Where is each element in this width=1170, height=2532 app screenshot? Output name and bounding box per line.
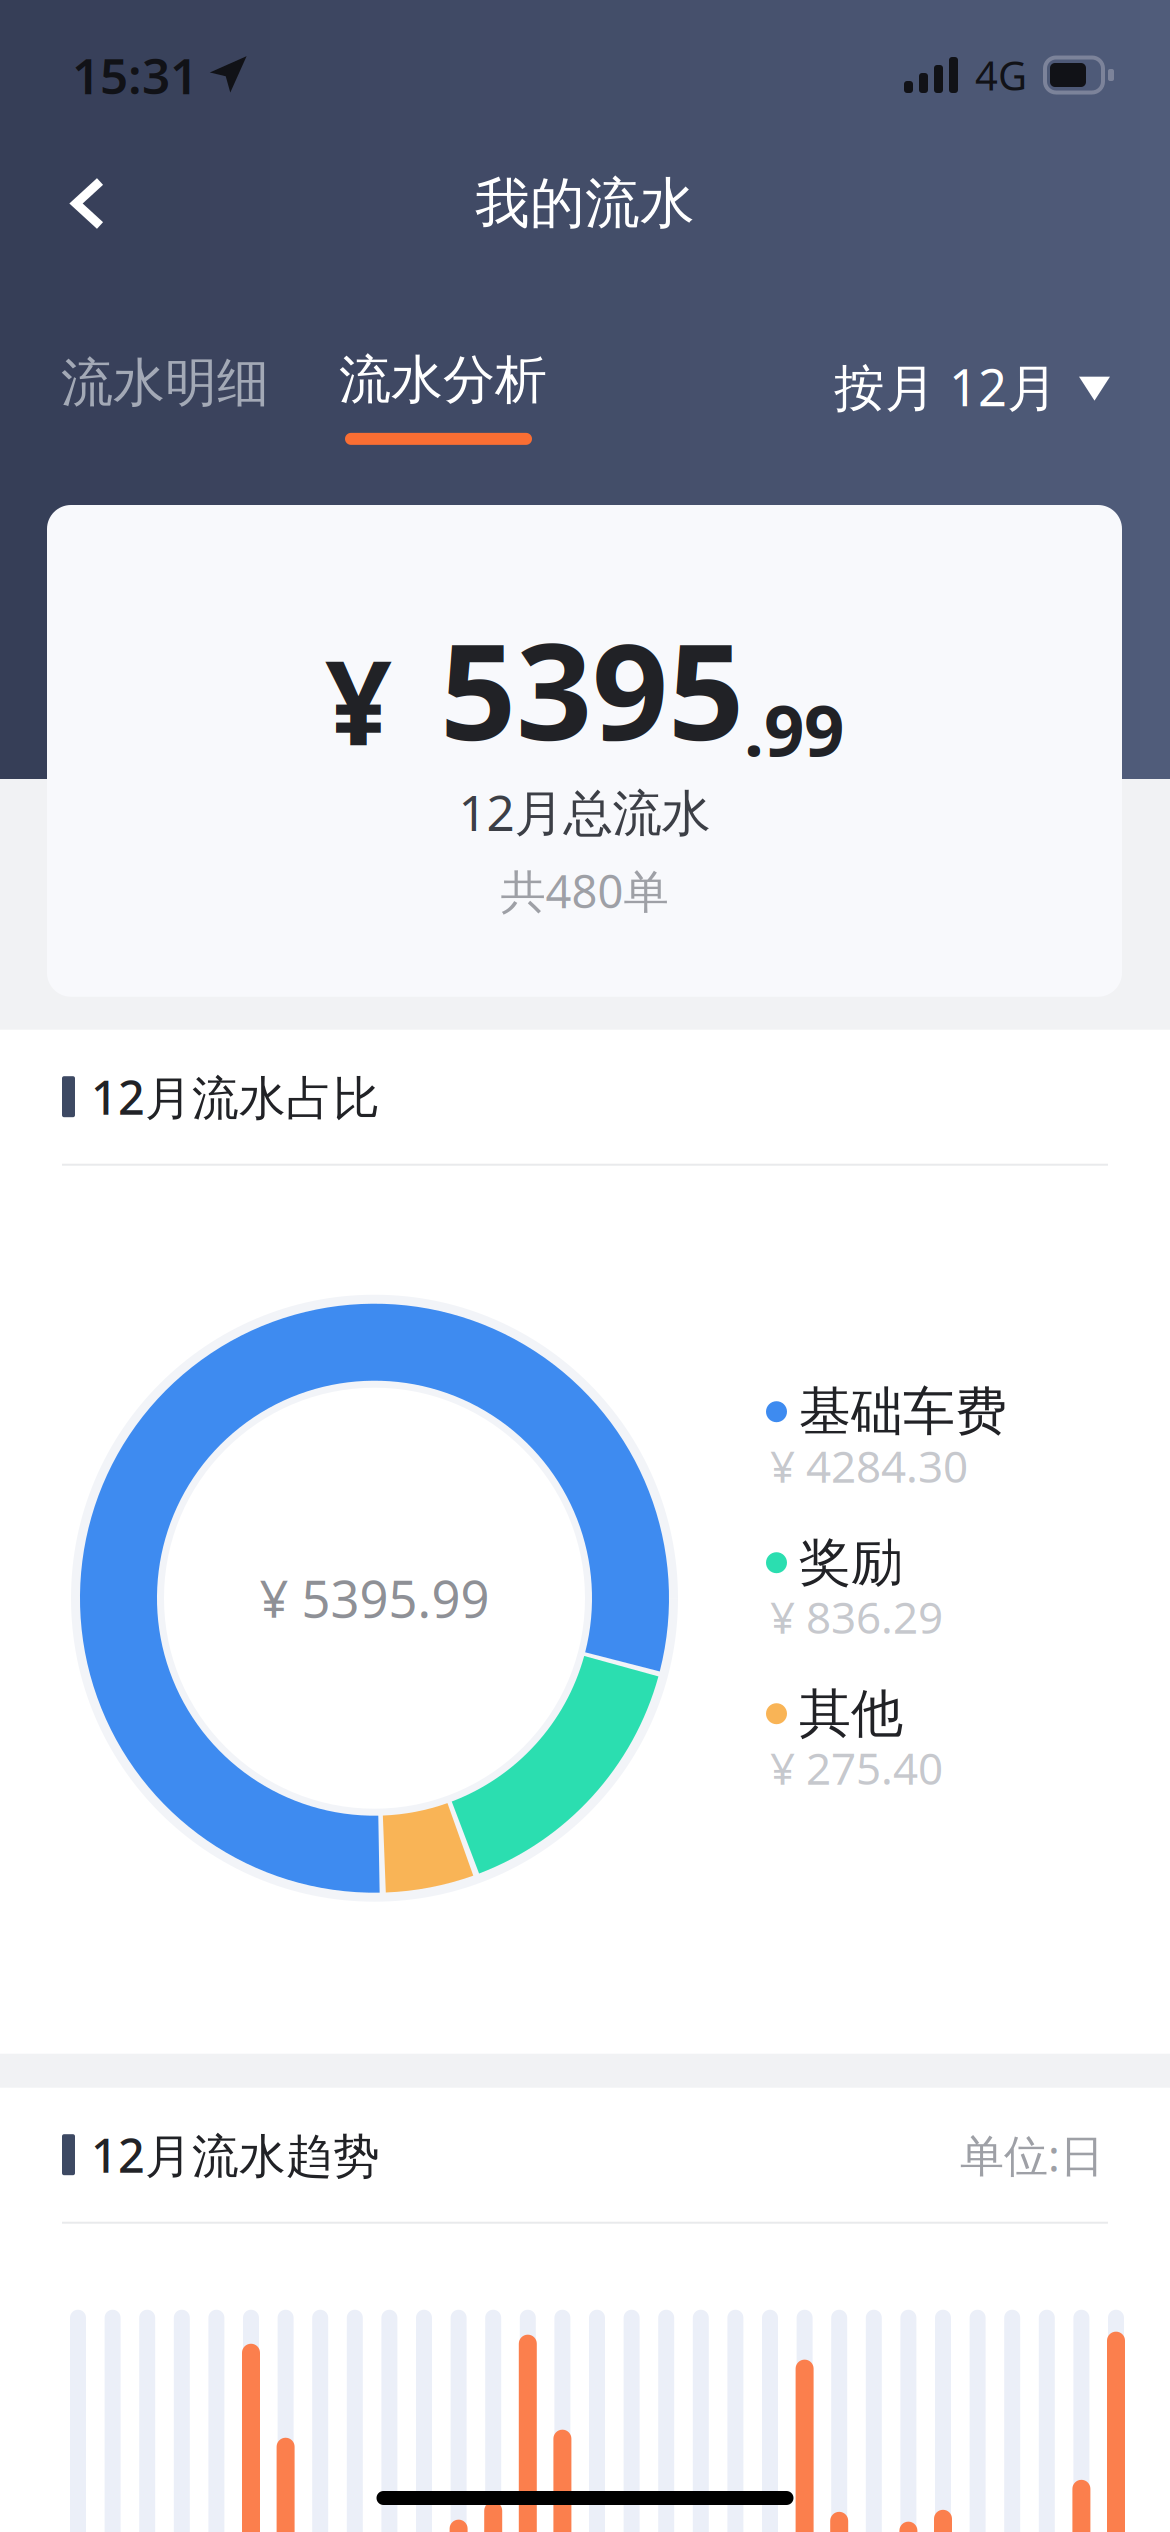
staticText: 流水明细 [61, 351, 269, 415]
staticText: 共480单 [500, 860, 668, 921]
staticText: 其他 [799, 1682, 903, 1746]
staticText: ¥ 836.29 [770, 1587, 943, 1646]
staticText: ¥ [325, 622, 392, 778]
staticText: ¥ 275.40 [770, 1738, 943, 1797]
staticText: ¥ 5395.99 [259, 1565, 489, 1632]
staticText: 15:31 [72, 42, 198, 108]
staticText: 按月 12月 [834, 353, 1058, 420]
staticText: 流水分析 [339, 348, 547, 412]
staticText: 基础车费 [799, 1380, 1007, 1444]
staticText: 4G [975, 48, 1027, 101]
button[interactable]: 流水明细 [61, 273, 269, 459]
staticText: 单位:日 [960, 2125, 1104, 2184]
staticText: 12月流水占比 [91, 1066, 380, 1128]
staticText: 我的流水 [475, 170, 695, 237]
staticText: 12月总流水 [458, 779, 710, 844]
staticText: .99 [744, 682, 844, 776]
button[interactable]: Back [0, 143, 150, 263]
button[interactable]: 按月 12月 [834, 273, 1110, 464]
staticText: 5395 [440, 600, 744, 777]
staticText: ¥ 4284.30 [770, 1436, 968, 1495]
button[interactable]: 流水分析 [339, 273, 547, 478]
staticText: 奖励 [799, 1531, 903, 1595]
staticText: 12月流水趋势 [91, 2124, 380, 2186]
